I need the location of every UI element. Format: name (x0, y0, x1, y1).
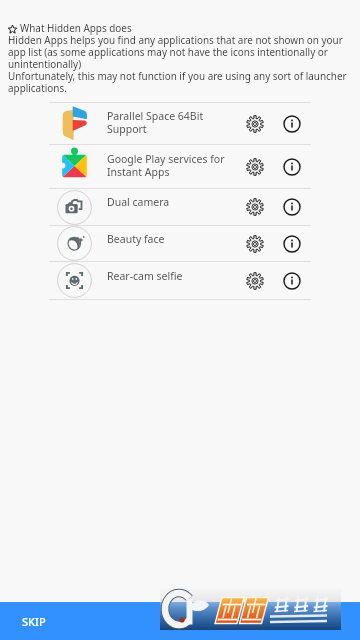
staticText: Google Play services for (107, 153, 225, 166)
staticText: Dual camera (107, 196, 170, 209)
button[interactable]: Rear-cam selfie (49, 262, 311, 299)
staticText: SKIP (22, 614, 46, 629)
button[interactable]: Settings (237, 189, 273, 225)
button[interactable]: Settings (237, 262, 273, 299)
button[interactable]: Info (273, 103, 311, 144)
staticText: NEXT (310, 614, 338, 629)
button[interactable]: NEXT (288, 605, 360, 638)
staticText: Beauty face (107, 233, 165, 246)
staticText: Support (107, 123, 147, 136)
button[interactable]: Info (273, 189, 311, 225)
button[interactable]: Settings (237, 226, 273, 261)
button[interactable]: Info (273, 226, 311, 261)
button[interactable]: Settings (237, 103, 273, 144)
button[interactable]: Beauty face (49, 226, 311, 261)
staticText: Rear-cam selfie (107, 270, 183, 283)
staticText: Hidden Apps helps you find any applicati… (8, 35, 347, 95)
button[interactable]: Dual camera (49, 189, 311, 225)
button[interactable]: Info (273, 145, 311, 188)
button[interactable]: Parallel Space 64Bit (49, 103, 311, 144)
staticText: Parallel Space 64Bit (107, 110, 204, 123)
button[interactable]: SKIP (0, 605, 68, 638)
staticText: Instant Apps (107, 166, 170, 179)
button[interactable]: Google Play services for (49, 145, 311, 188)
button[interactable]: Info (273, 262, 311, 299)
button[interactable]: Settings (237, 145, 273, 188)
staticText: What Hidden Apps does (20, 23, 132, 35)
